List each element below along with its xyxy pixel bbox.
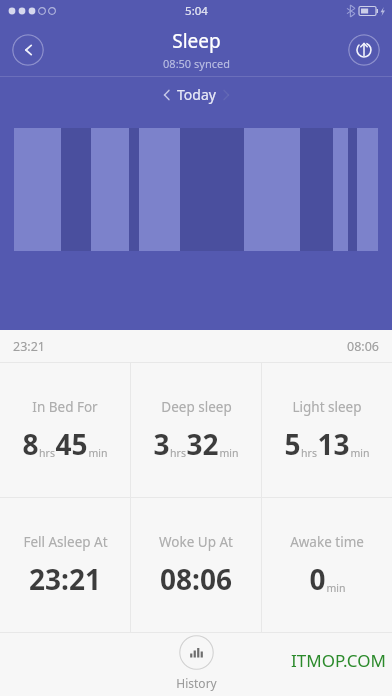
button[interactable]: Awake time bbox=[262, 498, 392, 632]
staticText: hrs bbox=[301, 446, 317, 460]
staticText: min bbox=[350, 446, 370, 460]
button[interactable]: Fell Asleep At bbox=[0, 498, 130, 632]
button[interactable]: Sync bbox=[348, 34, 380, 66]
staticText: 45 bbox=[55, 425, 88, 463]
staticText: 5:04 bbox=[185, 3, 208, 19]
button[interactable]: History bbox=[166, 633, 227, 693]
staticText: 08:50 synced bbox=[163, 56, 230, 71]
staticText: 23:21 bbox=[29, 560, 101, 598]
button[interactable]: Back bbox=[12, 34, 44, 66]
staticText: Fell Asleep At bbox=[23, 533, 108, 551]
staticText: 08:06 bbox=[347, 338, 379, 355]
staticText: ITMOP.COM bbox=[291, 649, 386, 672]
staticText: History bbox=[176, 675, 217, 691]
staticText: 13 bbox=[317, 425, 350, 463]
staticText: 5 bbox=[284, 425, 301, 463]
staticText: In Bed For bbox=[32, 398, 98, 416]
button[interactable]: Today bbox=[157, 81, 236, 108]
staticText: hrs bbox=[170, 446, 186, 460]
staticText: Woke Up At bbox=[159, 533, 233, 551]
staticText: 3 bbox=[153, 425, 170, 463]
staticText: Deep sleep bbox=[161, 398, 232, 416]
staticText: min bbox=[326, 581, 346, 595]
button[interactable]: Woke Up At bbox=[131, 498, 261, 632]
staticText: Light sleep bbox=[292, 398, 362, 416]
staticText: 08:06 bbox=[160, 560, 232, 598]
staticText: min bbox=[219, 446, 239, 460]
staticText: min bbox=[88, 446, 108, 460]
staticText: 23:21 bbox=[13, 338, 45, 355]
button[interactable]: In Bed For bbox=[0, 363, 130, 497]
button[interactable]: Deep sleep bbox=[131, 363, 261, 497]
staticText: Today bbox=[177, 85, 216, 104]
staticText: 32 bbox=[186, 425, 219, 463]
staticText: Sleep bbox=[172, 28, 221, 54]
staticText: 8 bbox=[22, 425, 39, 463]
button[interactable]: Light sleep bbox=[262, 363, 392, 497]
staticText: hrs bbox=[39, 446, 55, 460]
staticText: 0 bbox=[309, 560, 326, 598]
staticText: Awake time bbox=[290, 533, 364, 551]
